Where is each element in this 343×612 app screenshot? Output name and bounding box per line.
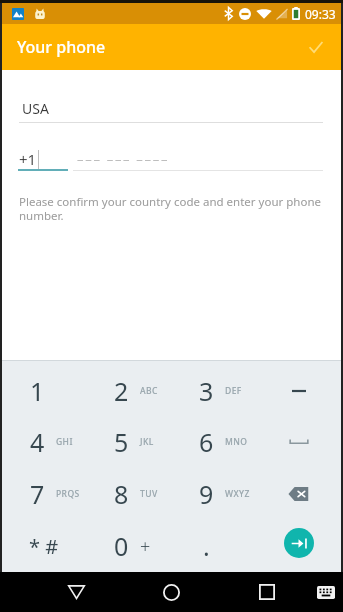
button[interactable]: 2 [86, 365, 171, 416]
button[interactable]: Confirm [299, 30, 333, 64]
staticText: 3 [199, 374, 214, 408]
staticText: USA [22, 99, 49, 118]
button[interactable]: 3 [171, 365, 256, 416]
button[interactable]: Switch keyboard [308, 575, 343, 610]
button[interactable]: Backspace [288, 486, 310, 502]
staticText: 2 [114, 374, 129, 408]
staticText: 8 [114, 477, 129, 511]
button[interactable]: Dash [286, 381, 312, 401]
staticText: ABC [140, 385, 158, 397]
staticText: 9 [199, 477, 214, 511]
staticText: WXYZ [225, 488, 250, 500]
button[interactable]: Next [284, 528, 314, 558]
staticText: . [203, 529, 210, 563]
staticText: Please confirm your country code and ent… [19, 194, 323, 223]
staticText: TUV [140, 488, 158, 500]
button[interactable]: . [171, 520, 256, 572]
button[interactable]: * # [2, 520, 86, 572]
staticText: * # [29, 533, 59, 560]
staticText: 4 [30, 425, 45, 459]
button[interactable]: Home [151, 572, 192, 612]
button[interactable]: 6 [171, 416, 256, 468]
button[interactable]: Back [56, 572, 97, 612]
staticText: 5 [114, 425, 129, 459]
staticText: GHI [56, 436, 73, 448]
staticText: + [140, 534, 151, 559]
staticText: 0 [114, 529, 129, 563]
staticText: PRQS [56, 488, 80, 500]
button[interactable]: 7 [2, 468, 86, 520]
button[interactable]: Next [256, 520, 341, 572]
staticText: +1 [19, 149, 37, 169]
button[interactable]: 9 [171, 468, 256, 520]
button[interactable]: 0 [86, 520, 171, 572]
staticText: 09:33 [305, 6, 336, 22]
button[interactable]: 8 [86, 468, 171, 520]
button[interactable]: Backspace [256, 468, 341, 520]
button[interactable]: 1 [2, 365, 86, 416]
button[interactable]: Recent apps [246, 572, 287, 612]
staticText: JKL [140, 436, 154, 448]
staticText: 6 [199, 425, 214, 459]
button[interactable]: USA [2, 70, 341, 123]
button[interactable]: Space [286, 432, 312, 452]
staticText: 1 [30, 374, 45, 408]
staticText: MNO [225, 436, 248, 448]
staticText: ––– ––– –––– [77, 150, 170, 168]
button[interactable]: Dash [256, 365, 341, 416]
button[interactable]: 5 [86, 416, 171, 468]
button[interactable]: 4 [2, 416, 86, 468]
button[interactable]: Space [256, 416, 341, 468]
staticText: DEF [225, 385, 242, 397]
staticText: 7 [30, 477, 45, 511]
staticText: Your phone [17, 36, 106, 58]
